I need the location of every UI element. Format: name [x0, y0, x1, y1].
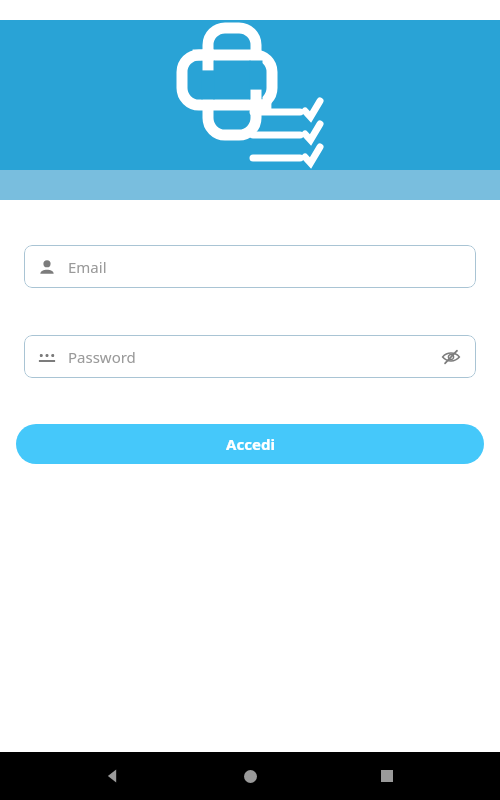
staticText: Password — [68, 347, 136, 367]
button[interactable]: Show password — [438, 344, 464, 370]
button[interactable]: Back — [89, 752, 137, 800]
button[interactable]: Password — [24, 335, 476, 378]
button[interactable]: Home — [226, 752, 274, 800]
button[interactable]: Recent apps — [363, 752, 411, 800]
button[interactable]: Email — [24, 245, 476, 288]
button[interactable]: Accedi — [16, 424, 484, 464]
staticText: Email — [68, 257, 107, 277]
staticText: Accedi — [226, 434, 275, 454]
